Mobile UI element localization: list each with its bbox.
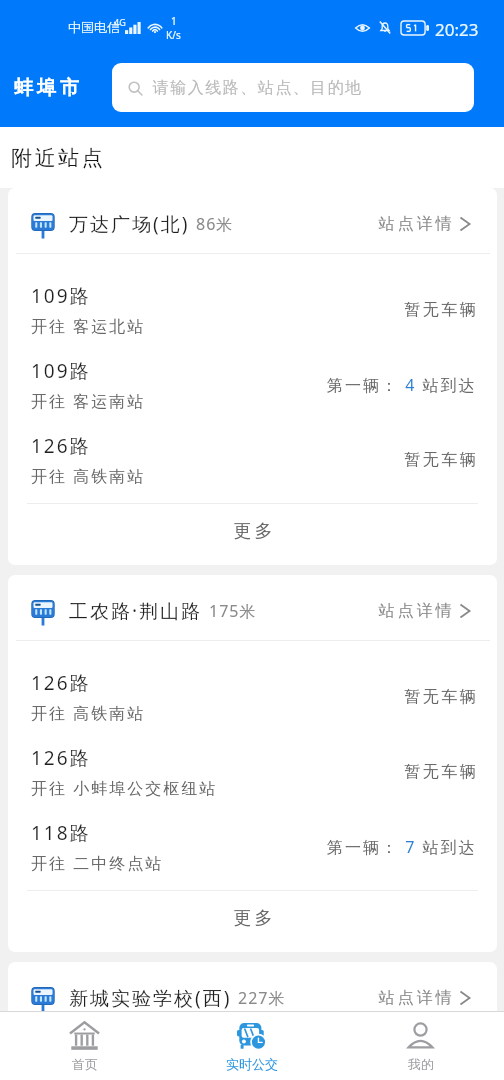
staticText: 工农路·荆山路 <box>69 598 203 624</box>
button[interactable]: 蚌埠市 <box>12 76 81 100</box>
staticText: 第一辆： 7 站到达 <box>327 836 477 858</box>
staticText: 86米 <box>196 213 234 235</box>
staticText: 1 <box>171 14 177 28</box>
button[interactable]: 118路 <box>8 809 497 884</box>
staticText: 万达广场(北) <box>69 211 190 237</box>
staticText: 126路 <box>31 670 91 696</box>
staticText: 开往 小蚌埠公交枢纽站 <box>31 777 218 799</box>
button[interactable]: 126路 <box>8 734 497 809</box>
button[interactable]: 工农路·荆山路 <box>8 575 497 640</box>
staticText: 126路 <box>31 745 91 771</box>
staticText: 新城实验学校(西) <box>69 985 232 1011</box>
staticText: 4G <box>114 16 126 28</box>
staticText: 站点详情 <box>377 601 453 621</box>
staticText: 175米 <box>209 600 257 622</box>
button[interactable]: Real-time bus <box>168 1012 336 1080</box>
button[interactable]: 126路 <box>8 422 497 497</box>
button[interactable]: 109路 <box>8 272 497 347</box>
staticText: 118路 <box>31 820 91 846</box>
staticText: 我的 <box>408 1056 434 1072</box>
staticText: 蚌埠市 <box>12 76 81 100</box>
button[interactable]: Home <box>0 1012 168 1080</box>
staticText: 附近站点 <box>10 145 104 171</box>
staticText: 开往 高铁南站 <box>31 465 146 487</box>
staticText: 第一辆： 4 站到达 <box>327 374 477 396</box>
staticText: 请输入线路、站点、目的地 <box>152 78 362 98</box>
staticText: 126路 <box>31 433 91 459</box>
staticText: 更多 <box>232 520 274 543</box>
staticText: 中国电信 <box>68 19 120 35</box>
staticText: 开往 二中终点站 <box>31 852 164 874</box>
staticText: 109路 <box>31 283 91 309</box>
staticText: 站点详情 <box>377 988 453 1008</box>
staticText: 227米 <box>238 987 286 1009</box>
staticText: 开往 客运南站 <box>31 390 146 412</box>
staticText: 开往 高铁南站 <box>31 702 146 724</box>
staticText: 暂无车辆 <box>403 450 477 470</box>
staticText: 首页 <box>72 1056 98 1072</box>
staticText: 站点详情 <box>377 214 453 234</box>
button[interactable]: 万达广场(北) <box>8 188 497 253</box>
button[interactable]: 126路 <box>8 659 497 734</box>
staticText: 109路 <box>31 358 91 384</box>
button[interactable]: 新城实验学校(西) <box>8 962 497 1027</box>
staticText: 实时公交 <box>226 1056 278 1072</box>
staticText: 暂无车辆 <box>403 762 477 782</box>
staticText: 开往 客运北站 <box>31 315 146 337</box>
staticText: 更多 <box>232 907 274 930</box>
button[interactable]: Profile <box>336 1012 504 1080</box>
staticText: 暂无车辆 <box>403 300 477 320</box>
button[interactable]: 109路 <box>8 347 497 422</box>
staticText: 暂无车辆 <box>403 687 477 707</box>
staticText: 20:23 <box>435 18 479 41</box>
staticText: K/s <box>166 28 181 42</box>
button[interactable]: 请输入线路、站点、目的地 <box>112 63 474 112</box>
button[interactable]: 更多 <box>8 504 497 565</box>
button[interactable]: 更多 <box>8 891 497 952</box>
